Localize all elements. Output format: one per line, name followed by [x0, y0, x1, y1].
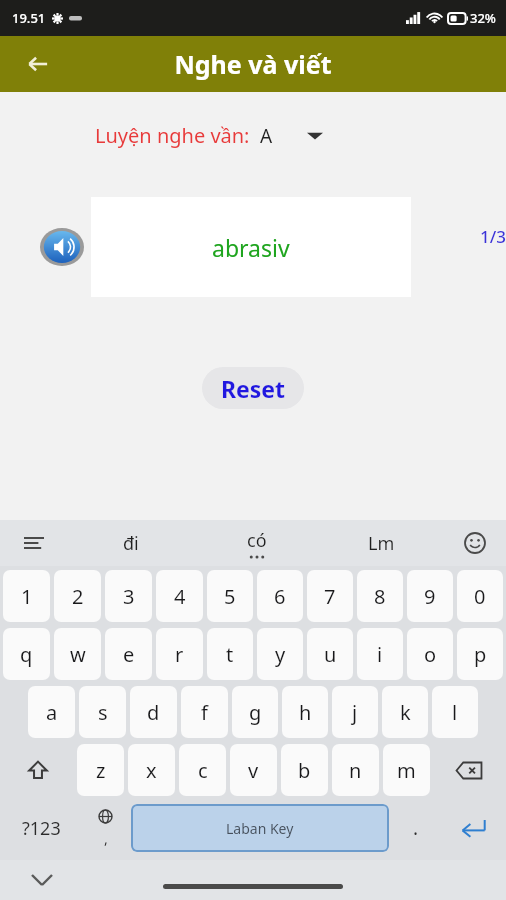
staticText: f [201, 699, 208, 726]
button[interactable]: Change language [79, 802, 131, 854]
button[interactable]: g [232, 686, 278, 738]
button[interactable]: t [207, 628, 253, 680]
staticText: j [352, 699, 358, 726]
button[interactable]: i [357, 628, 403, 680]
staticText: abrasiv [212, 232, 290, 263]
staticText: h [299, 699, 312, 726]
staticText: q [20, 641, 33, 668]
staticText: 1/36 [480, 225, 506, 248]
button[interactable]: 3 [105, 570, 152, 622]
button[interactable]: z [77, 744, 124, 796]
button[interactable]: 0 [457, 570, 503, 622]
button[interactable]: ?123 [3, 802, 79, 854]
staticText: d [147, 699, 160, 726]
button[interactable]: u [307, 628, 353, 680]
staticText: 8 [374, 583, 386, 610]
staticText: Lm [368, 531, 395, 556]
staticText: đi [123, 531, 139, 556]
staticText: i [377, 641, 383, 668]
staticText: k [400, 699, 411, 726]
button[interactable]: b [281, 744, 328, 796]
button[interactable]: y [257, 628, 303, 680]
staticText: n [349, 757, 362, 784]
staticText: p [474, 641, 487, 668]
button[interactable]: 2 [54, 570, 101, 622]
staticText: Luyện nghe vần: [95, 122, 250, 149]
staticText: 3 [123, 583, 135, 610]
button[interactable]: Emoji [444, 520, 506, 566]
staticText: e [123, 641, 135, 668]
staticText: y [275, 641, 286, 668]
staticText: ?123 [22, 816, 61, 841]
staticText: s [98, 699, 108, 726]
button[interactable]: 4 [156, 570, 203, 622]
button[interactable]: 9 [407, 570, 453, 622]
button[interactable]: d [130, 686, 177, 738]
staticText: l [452, 699, 458, 726]
button[interactable]: r [156, 628, 203, 680]
staticText: 0 [474, 583, 486, 610]
button[interactable]: Back [16, 42, 60, 86]
button[interactable]: 1 [3, 570, 50, 622]
staticText: r [175, 641, 184, 668]
button[interactable]: n [332, 744, 379, 796]
button[interactable]: a [28, 686, 75, 738]
button[interactable]: 8 [357, 570, 403, 622]
button[interactable]: o [407, 628, 453, 680]
staticText: 2 [72, 583, 84, 610]
button[interactable]: h [282, 686, 328, 738]
staticText: o [424, 641, 437, 668]
staticText: A [260, 123, 273, 149]
button[interactable]: Menu [0, 520, 68, 566]
staticText: có [247, 528, 267, 553]
staticText: . [413, 815, 419, 841]
button[interactable]: . [389, 802, 443, 854]
button[interactable]: Shift [3, 744, 73, 796]
staticText: a [46, 699, 58, 726]
button[interactable]: k [382, 686, 428, 738]
button[interactable]: 7 [307, 570, 353, 622]
staticText: c [198, 757, 208, 784]
button[interactable]: q [3, 628, 50, 680]
button[interactable]: 6 [257, 570, 303, 622]
button[interactable]: Backspace [434, 744, 503, 796]
button[interactable]: j [332, 686, 378, 738]
button[interactable]: v [230, 744, 277, 796]
staticText: Laban Key [226, 819, 294, 838]
button[interactable]: s [79, 686, 126, 738]
staticText: t [226, 641, 234, 668]
staticText: u [324, 641, 337, 668]
staticText: b [298, 757, 311, 784]
staticText: Reset [221, 373, 286, 404]
button[interactable]: f [181, 686, 228, 738]
staticText: , [104, 829, 108, 848]
button[interactable]: abrasiv [91, 197, 411, 297]
button[interactable]: Reset [202, 367, 304, 409]
button[interactable]: 5 [207, 570, 253, 622]
button[interactable]: Enter [443, 802, 503, 854]
button[interactable]: p [457, 628, 503, 680]
button[interactable]: Play sound [40, 225, 84, 269]
staticText: Nghe và viết [174, 47, 332, 81]
button[interactable]: có [194, 520, 319, 566]
button[interactable]: m [383, 744, 430, 796]
staticText: 6 [274, 583, 286, 610]
button[interactable]: l [432, 686, 478, 738]
staticText: 5 [224, 583, 236, 610]
button[interactable]: Lm [319, 520, 444, 566]
staticText: 1 [21, 583, 33, 610]
button[interactable]: w [54, 628, 101, 680]
staticText: x [146, 757, 157, 784]
staticText: w [70, 641, 86, 668]
button[interactable]: x [128, 744, 175, 796]
button[interactable]: đi [68, 520, 194, 566]
staticText: z [96, 757, 106, 784]
staticText: 9 [424, 583, 436, 610]
button[interactable]: c [179, 744, 226, 796]
button[interactable]: A [260, 123, 323, 149]
button[interactable]: Laban Key [131, 804, 389, 852]
button[interactable]: Hide keyboard [22, 860, 62, 900]
staticText: v [248, 757, 259, 784]
staticText: 19.51 [12, 9, 46, 27]
button[interactable]: e [105, 628, 152, 680]
